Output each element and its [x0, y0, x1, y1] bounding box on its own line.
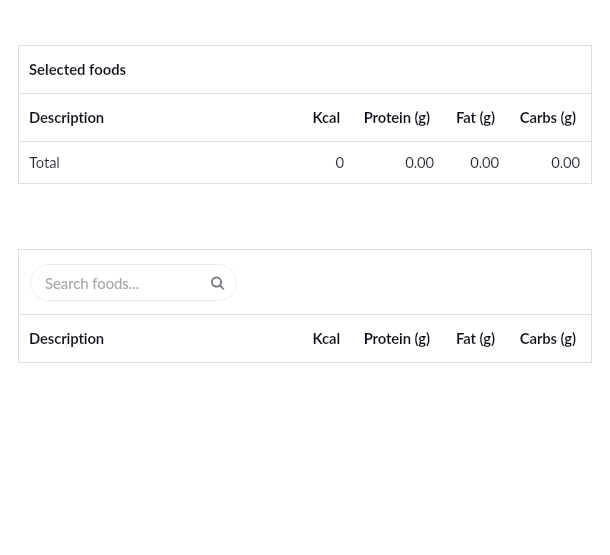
button[interactable]: Carbs (g): [495, 314, 576, 362]
button[interactable]: Fat (g): [430, 93, 495, 140]
staticText: Protein (g): [363, 329, 430, 347]
staticText: Kcal: [312, 329, 340, 347]
staticText: 0.00: [470, 153, 499, 171]
staticText: 0.00: [551, 153, 580, 171]
staticText: Carbs (g): [519, 108, 576, 126]
staticText: Selected foods: [29, 60, 127, 78]
other: Search: [209, 275, 225, 291]
staticText: Total: [29, 153, 60, 171]
staticText: 0: [335, 153, 344, 171]
button[interactable]: Description: [29, 314, 288, 362]
button[interactable]: Protein (g): [340, 314, 430, 362]
staticText: Carbs (g): [519, 329, 576, 347]
staticText: 0.00: [405, 153, 434, 171]
staticText: Description: [29, 329, 105, 347]
staticText: Kcal: [312, 108, 340, 126]
button[interactable]: Fat (g): [430, 314, 495, 362]
button[interactable]: Kcal: [288, 93, 340, 140]
staticText: Protein (g): [363, 108, 430, 126]
staticText: Description: [29, 108, 105, 126]
button[interactable]: Description: [29, 93, 288, 140]
button[interactable]: Carbs (g): [495, 93, 576, 140]
button[interactable]: Protein (g): [340, 93, 430, 140]
staticText: Fat (g): [456, 108, 495, 126]
staticText: Fat (g): [456, 329, 495, 347]
button[interactable]: Kcal: [288, 314, 340, 362]
staticText: Search foods...: [45, 274, 140, 292]
button[interactable]: Search foods...: [30, 264, 237, 301]
